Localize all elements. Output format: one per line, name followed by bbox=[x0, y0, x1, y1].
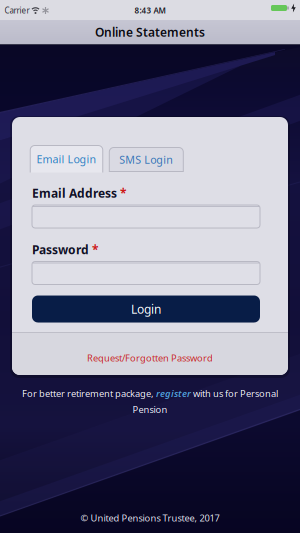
staticText: 8:43 AM bbox=[134, 5, 165, 16]
staticText: © United Pensions Trustee, 2017 bbox=[80, 512, 219, 524]
button[interactable]: Email Login bbox=[30, 145, 103, 172]
button[interactable]: Request/Forgotten Password bbox=[35, 348, 265, 368]
staticText: Carrier bbox=[4, 5, 29, 16]
staticText: * bbox=[89, 241, 99, 257]
staticText: Password bbox=[32, 241, 89, 257]
staticText: Request/Forgotten Password bbox=[87, 352, 213, 364]
staticText: with us for Personal bbox=[191, 387, 278, 400]
staticText: Online Statements bbox=[95, 24, 205, 40]
staticText: Login bbox=[131, 301, 161, 317]
staticText: register bbox=[156, 387, 191, 400]
staticText: Email Login bbox=[36, 152, 96, 166]
button[interactable]: SMS Login bbox=[109, 147, 183, 171]
staticText: * bbox=[117, 185, 127, 201]
button[interactable]: Login bbox=[32, 295, 260, 322]
button[interactable]: register bbox=[156, 387, 191, 400]
staticText: Email Address bbox=[32, 185, 117, 201]
staticText: Pension bbox=[132, 403, 167, 416]
staticText: SMS Login bbox=[119, 152, 173, 167]
staticText: For better retirement package, bbox=[22, 387, 156, 400]
